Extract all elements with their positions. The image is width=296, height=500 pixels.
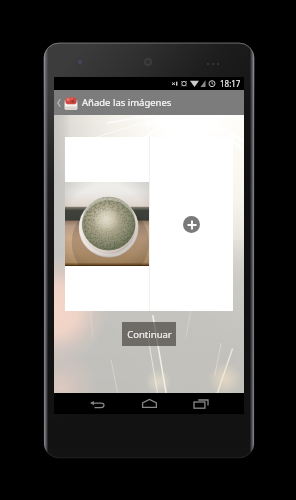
- staticText: 18:17: [220, 78, 241, 89]
- button[interactable]: Navigate up: [54, 95, 81, 111]
- button[interactable]: Back: [88, 393, 106, 414]
- staticText: Añade las imágenes: [82, 96, 172, 109]
- button[interactable]: Selected photo: [65, 182, 149, 266]
- staticText: Continuar: [127, 328, 172, 341]
- button[interactable]: Continuar: [122, 322, 176, 346]
- button[interactable]: Add image: [183, 216, 200, 233]
- button[interactable]: Home: [140, 393, 158, 414]
- button[interactable]: Recent apps: [192, 393, 210, 414]
